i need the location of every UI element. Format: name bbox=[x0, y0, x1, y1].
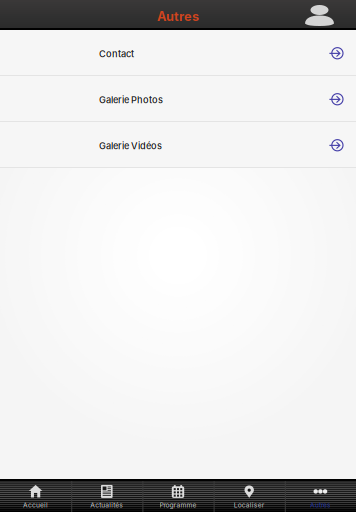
button[interactable]: Profile bbox=[305, 0, 356, 30]
button[interactable]: Actualités bbox=[71, 480, 142, 512]
staticText: Galerie Photos bbox=[99, 94, 163, 105]
button[interactable]: Contact bbox=[0, 30, 356, 75]
button[interactable]: Localiser bbox=[214, 480, 285, 512]
button[interactable]: Programme bbox=[142, 480, 214, 512]
button[interactable]: Autres bbox=[285, 480, 356, 512]
staticText: Autres bbox=[157, 9, 199, 24]
staticText: Localiser bbox=[234, 501, 265, 509]
button[interactable]: Galerie Vidéos bbox=[0, 122, 356, 167]
staticText: Galerie Vidéos bbox=[99, 140, 162, 151]
staticText: Actualités bbox=[90, 501, 123, 509]
button[interactable]: Galerie Photos bbox=[0, 76, 356, 121]
staticText: Contact bbox=[99, 48, 134, 59]
staticText: Autres bbox=[310, 501, 331, 509]
button[interactable]: Accueil bbox=[0, 480, 71, 512]
staticText: Accueil bbox=[23, 501, 48, 509]
staticText: Programme bbox=[159, 501, 196, 509]
